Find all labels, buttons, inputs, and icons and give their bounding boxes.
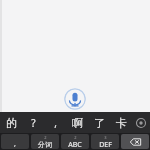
button[interactable]: 啊 xyxy=(66,112,88,133)
button[interactable]: 了 xyxy=(88,112,110,133)
button[interactable]: 2 xyxy=(31,134,59,149)
button[interactable]: 3 xyxy=(91,134,119,149)
staticText: , xyxy=(14,139,16,149)
button[interactable]: Backspace xyxy=(121,134,149,149)
staticText: ABC xyxy=(68,140,82,149)
staticText: 2 xyxy=(74,135,77,140)
staticText: 啊 xyxy=(72,116,83,130)
staticText: ? xyxy=(31,116,36,130)
button[interactable]: , xyxy=(44,112,66,133)
staticText: 3 xyxy=(104,135,107,140)
staticText: , xyxy=(54,116,57,130)
button[interactable]: Voice input xyxy=(64,88,86,110)
button[interactable]: , xyxy=(1,134,29,149)
staticText: 2 xyxy=(44,135,47,140)
button[interactable]: 的 xyxy=(0,112,22,133)
button[interactable]: ? xyxy=(22,112,44,133)
staticText: 卡 xyxy=(116,116,127,130)
staticText: 了 xyxy=(94,116,105,130)
staticText: DEF xyxy=(99,140,112,149)
button[interactable]: 卡 xyxy=(110,112,132,133)
staticText: 分词 xyxy=(38,140,52,149)
staticText: 的 xyxy=(6,116,17,130)
button[interactable]: 2 xyxy=(61,134,89,149)
button[interactable]: Close keyboard xyxy=(132,114,150,132)
